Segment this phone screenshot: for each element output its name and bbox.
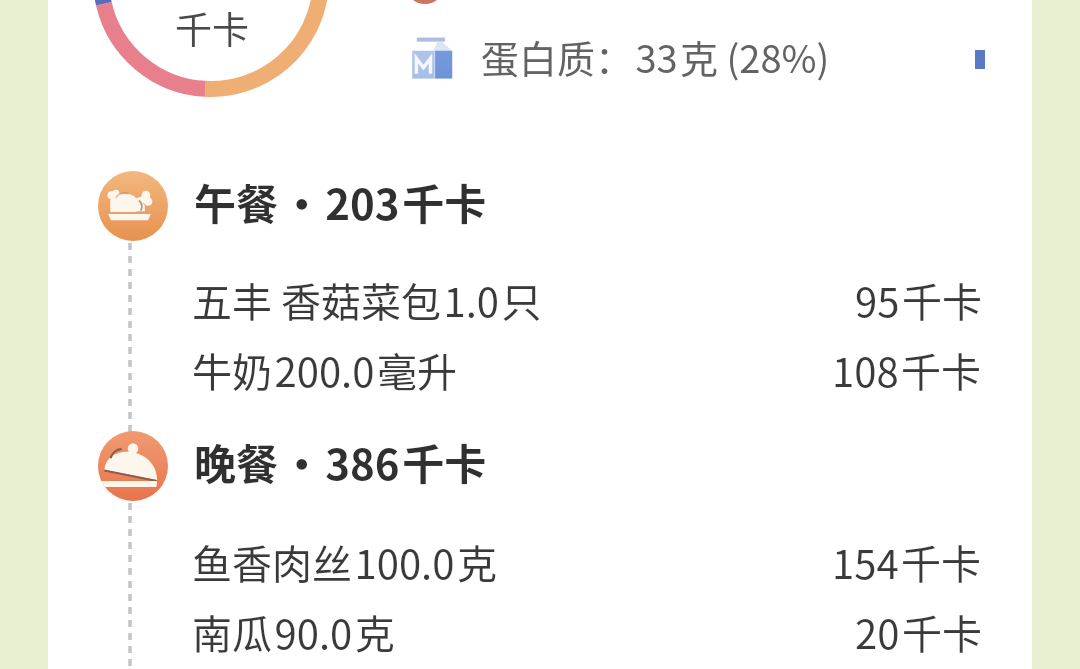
- staticText: 蛋白质： 33 克 (28%): [481, 29, 830, 84]
- staticText: 五丰 香菇菜包 1.0 只: [192, 271, 542, 329]
- button[interactable]: 牛奶 200.0 毫升: [192, 341, 982, 399]
- button[interactable]: 南瓜 90.0 克: [192, 603, 982, 661]
- staticText: 108 千卡: [832, 341, 982, 399]
- button[interactable]: Lunch: [98, 166, 982, 236]
- staticText: 午餐 · 203 千卡: [194, 171, 487, 232]
- button[interactable]: Dinner: [98, 426, 982, 496]
- staticText: 千卡: [175, 1, 249, 55]
- staticText: 晚餐 · 386 千卡: [194, 431, 487, 492]
- button[interactable]: 五丰 香菇菜包 1.0 只: [192, 271, 982, 329]
- staticText: 95 千卡: [855, 271, 982, 329]
- staticText: 南瓜 90.0 克: [192, 603, 395, 661]
- staticText: 牛奶 200.0 毫升: [192, 341, 457, 399]
- staticText: 20 千卡: [855, 603, 982, 661]
- button[interactable]: 鱼香肉丝 100.0 克: [192, 533, 982, 591]
- staticText: 鱼香肉丝 100.0 克: [192, 533, 497, 591]
- other: Dinner: [98, 431, 168, 501]
- staticText: 154 千卡: [832, 533, 982, 591]
- other: Lunch: [98, 171, 168, 241]
